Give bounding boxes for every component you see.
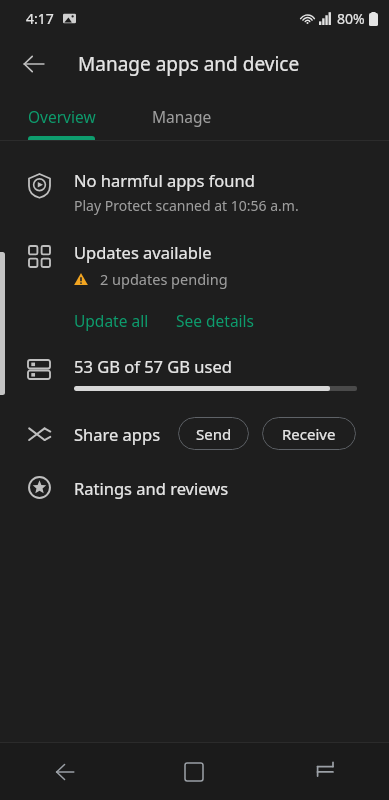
staticText: Receive: [282, 424, 336, 444]
staticText: 4:17: [26, 9, 54, 28]
button[interactable]: Updates available: [74, 241, 369, 289]
staticText: Ratings and reviews: [74, 477, 229, 499]
button[interactable]: Manage: [124, 92, 240, 140]
staticText: Overview: [28, 106, 96, 127]
button[interactable]: Receive: [262, 417, 356, 450]
staticText: 53 GB of 57 GB used: [74, 355, 232, 377]
staticText: Share apps: [74, 423, 161, 445]
staticText: Play Protect scanned at 10:56 a.m.: [74, 196, 299, 215]
button[interactable]: Send: [178, 417, 249, 450]
button[interactable]: Update all: [74, 306, 149, 335]
button[interactable]: 53 GB of 57 GB used: [0, 355, 389, 391]
button[interactable]: See details: [176, 306, 255, 335]
staticText: See details: [176, 310, 255, 331]
staticText: Manage: [152, 106, 212, 127]
staticText: 80%: [337, 9, 365, 28]
staticText: Send: [196, 424, 232, 444]
button[interactable]: Ratings and reviews: [0, 470, 389, 505]
staticText: Updates available: [74, 241, 212, 263]
button[interactable]: Recents: [259, 743, 389, 800]
button[interactable]: Home: [129, 743, 259, 800]
button[interactable]: No harmful apps found: [0, 165, 389, 219]
button[interactable]: Back: [0, 743, 129, 800]
button[interactable]: Overview: [0, 92, 124, 140]
button[interactable]: Back: [10, 40, 58, 88]
staticText: 2 updates pending: [100, 269, 228, 289]
staticText: Manage apps and device: [78, 51, 300, 77]
staticText: No harmful apps found: [74, 169, 255, 191]
staticText: Update all: [74, 310, 149, 331]
